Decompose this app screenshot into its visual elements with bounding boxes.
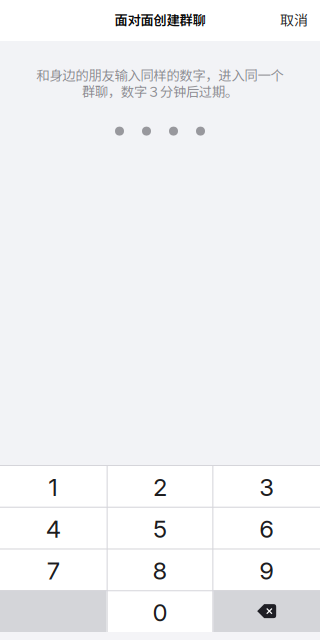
staticText: 0 bbox=[152, 598, 167, 627]
button[interactable]: 取消 bbox=[264, 0, 320, 42]
staticText: 群聊，数字３分钟后过期。 bbox=[82, 81, 238, 101]
staticText: 取消 bbox=[280, 9, 308, 30]
button[interactable]: 0 bbox=[107, 590, 213, 632]
button[interactable]: 8 bbox=[107, 548, 213, 590]
button[interactable]: 1 bbox=[0, 465, 107, 507]
staticText: 3 bbox=[259, 473, 274, 502]
staticText: 4 bbox=[46, 515, 61, 544]
staticText: 5 bbox=[153, 515, 167, 544]
staticText: 9 bbox=[259, 556, 274, 585]
staticText: 1 bbox=[48, 473, 58, 502]
staticText: 7 bbox=[47, 556, 60, 585]
button[interactable]: 7 bbox=[0, 548, 107, 590]
button[interactable]: 4 bbox=[0, 507, 107, 549]
staticText: 面对面创建群聊 bbox=[114, 10, 205, 29]
button[interactable]: 6 bbox=[213, 507, 320, 549]
button[interactable]: 5 bbox=[107, 507, 213, 549]
staticText: 6 bbox=[259, 515, 274, 544]
button[interactable]: 2 bbox=[107, 465, 213, 507]
button[interactable]: 3 bbox=[213, 465, 320, 507]
staticText: 和身边的朋友输入同样的数字，进入同一个 bbox=[36, 65, 283, 84]
button[interactable]: Delete bbox=[213, 590, 320, 632]
staticText: 8 bbox=[152, 556, 167, 585]
button[interactable]: 9 bbox=[213, 548, 320, 590]
staticText: 2 bbox=[153, 473, 167, 502]
